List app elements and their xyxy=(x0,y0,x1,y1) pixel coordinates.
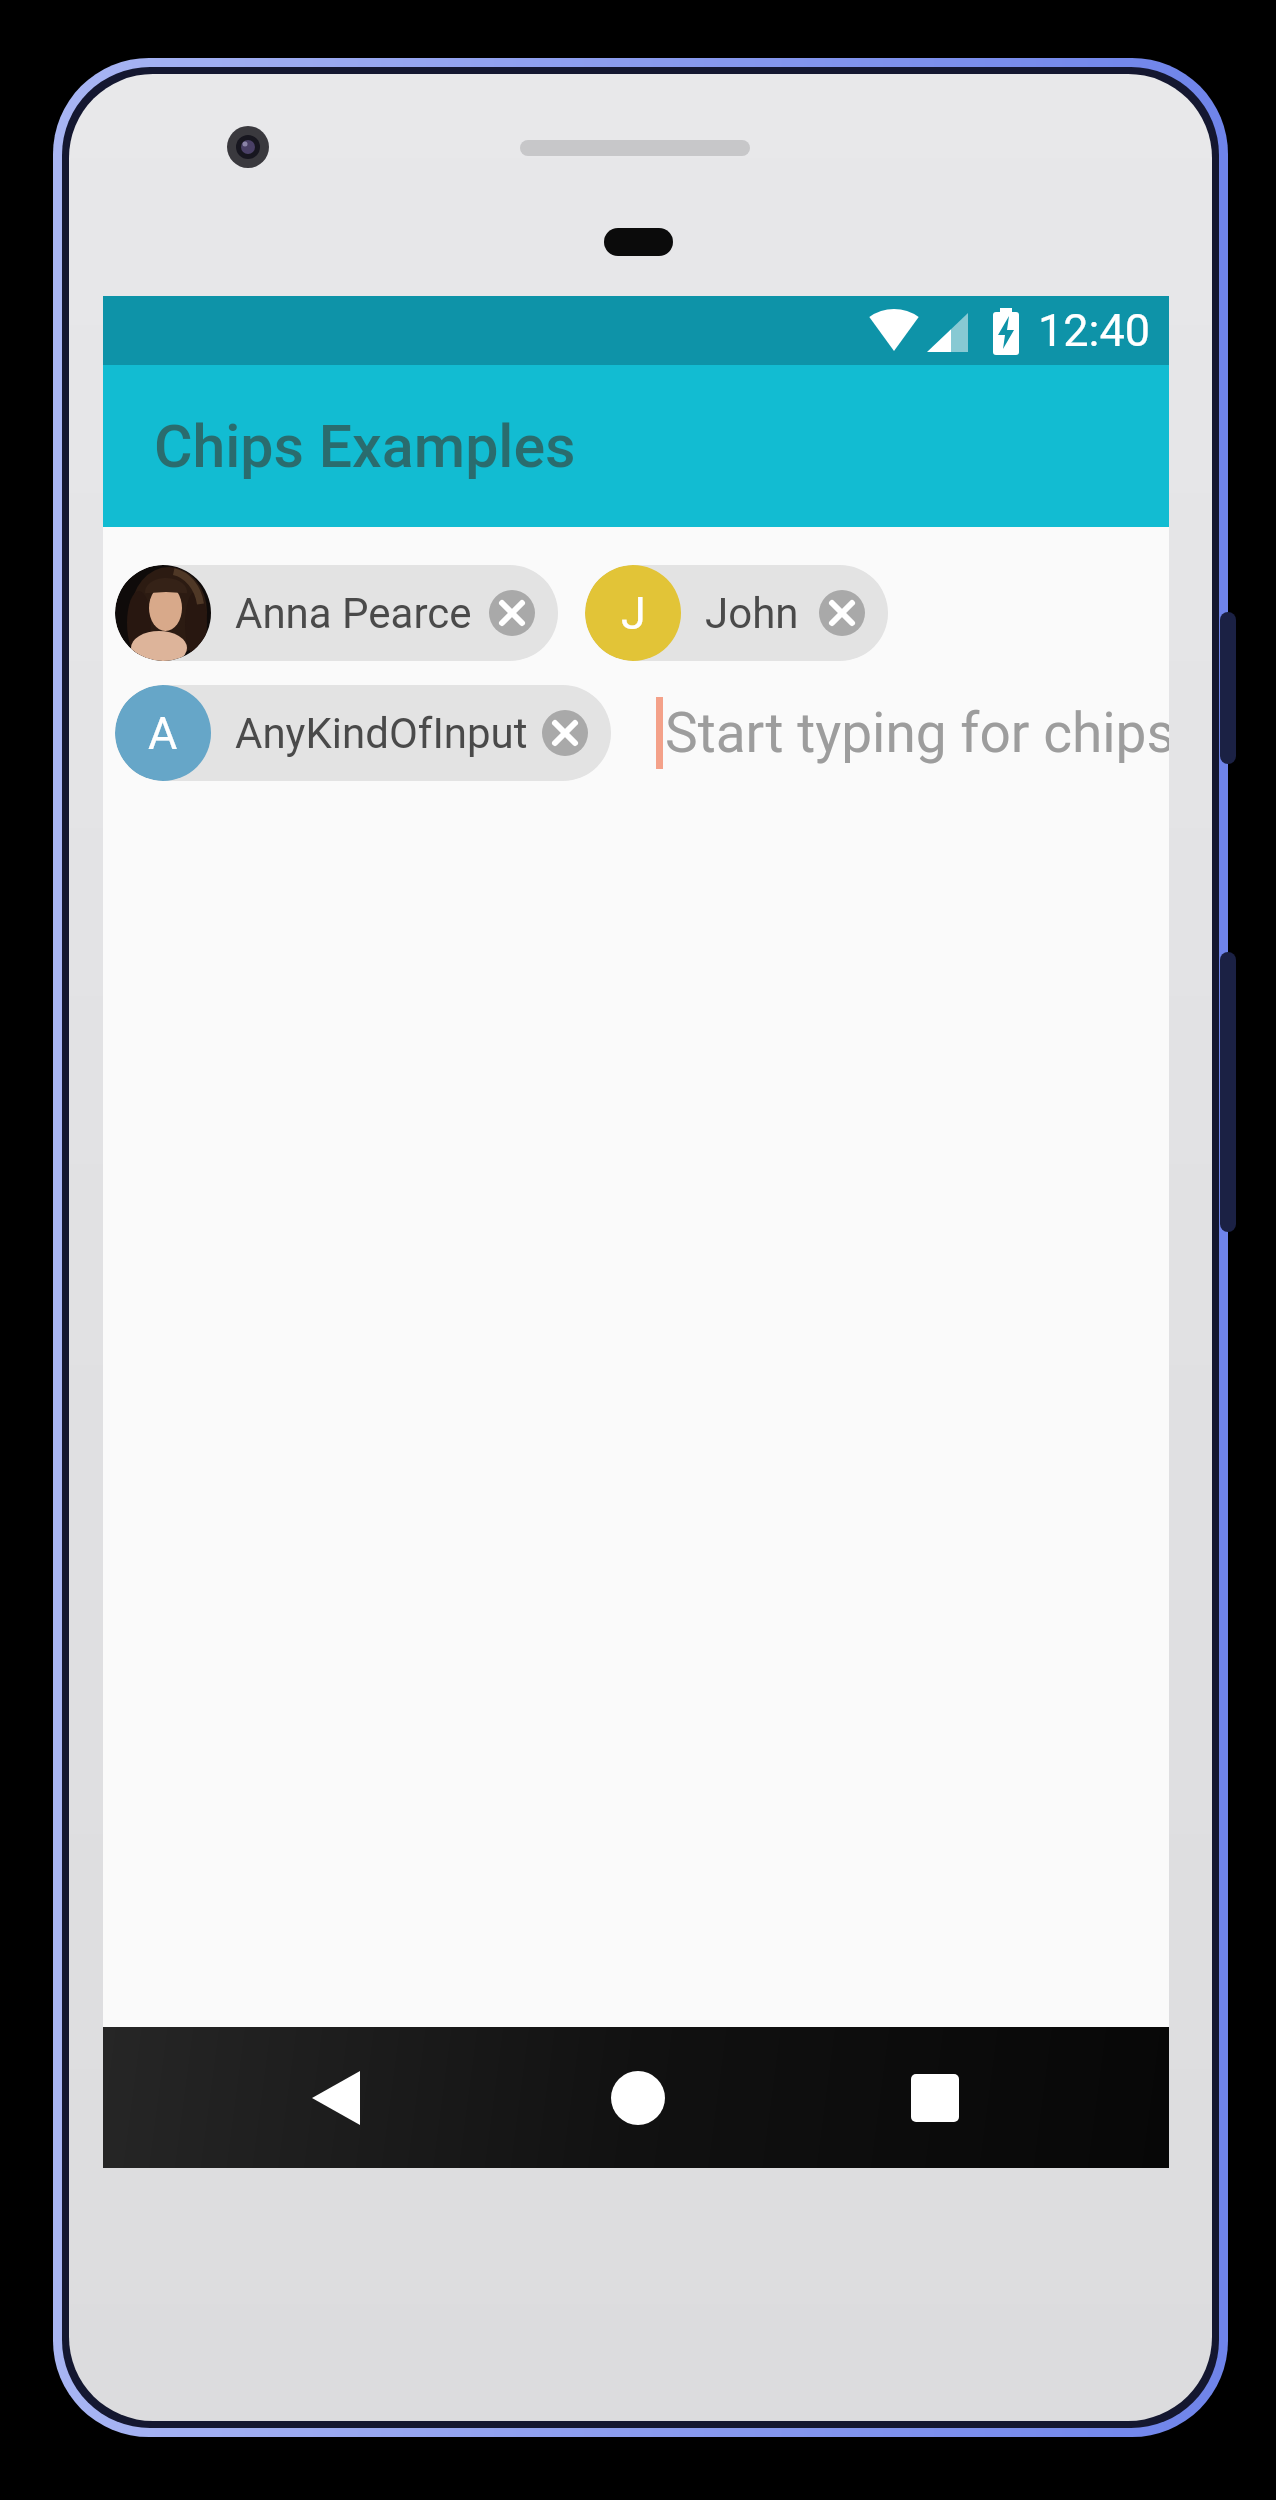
staticText: AnyKindOfInput xyxy=(235,709,528,758)
button[interactable] xyxy=(103,2027,459,2168)
button[interactable] xyxy=(814,2027,1169,2168)
staticText: A xyxy=(148,707,178,760)
button[interactable] xyxy=(489,590,535,636)
staticText: John xyxy=(705,589,799,638)
staticText: Start typing for chips xyxy=(665,701,1169,765)
staticText: 12:40 xyxy=(1038,304,1151,357)
staticText: Anna Pearce xyxy=(235,589,472,638)
button[interactable]: A xyxy=(115,685,611,781)
button[interactable]: Anna Pearce xyxy=(115,565,558,661)
button[interactable] xyxy=(542,710,588,756)
button[interactable] xyxy=(819,590,865,636)
staticText: Chips Examples xyxy=(154,412,576,481)
button[interactable] xyxy=(459,2027,814,2168)
staticText: J xyxy=(621,587,646,640)
button[interactable]: J xyxy=(585,565,888,661)
